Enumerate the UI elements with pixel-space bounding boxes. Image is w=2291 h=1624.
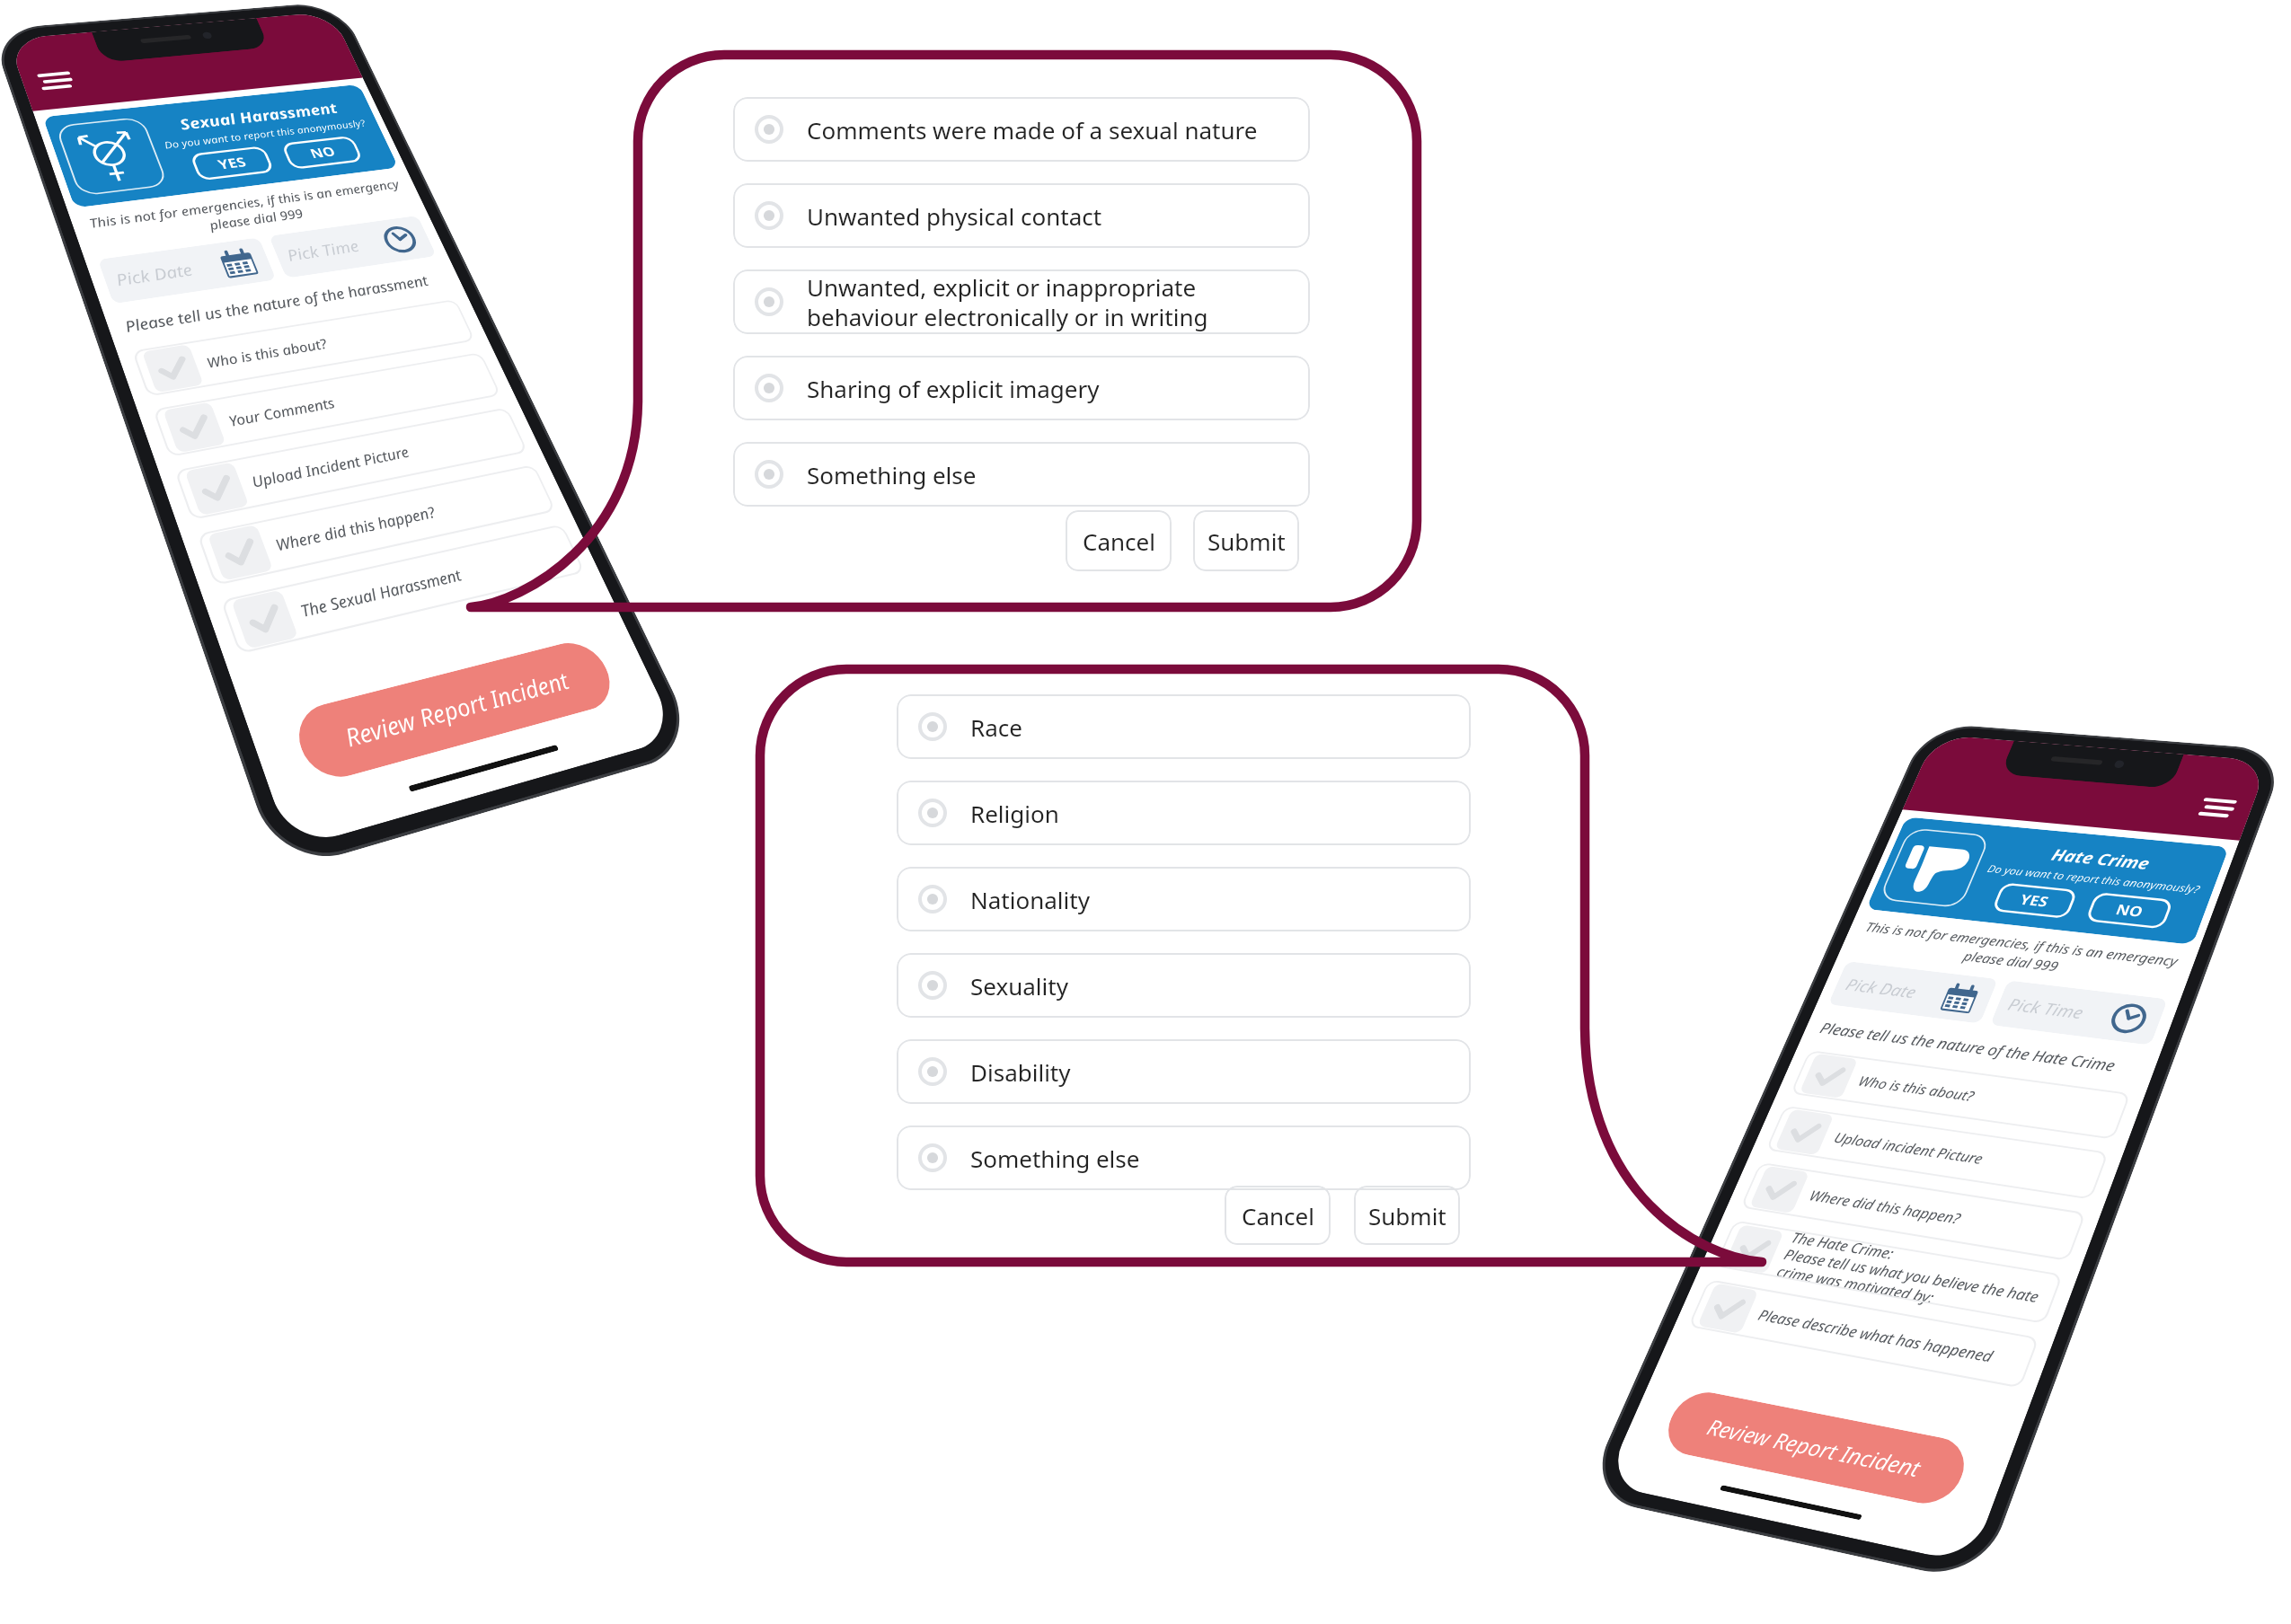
staticText: Pick Time — [2004, 993, 2087, 1024]
staticText: Religion — [970, 798, 1059, 829]
staticText: Please describe what has happened — [1755, 1305, 1996, 1367]
button[interactable]: Unwanted, explicit or inappropriate beha… — [733, 269, 1310, 334]
button[interactable]: Review Report Incident — [289, 636, 621, 785]
staticText: Upload Incident Picture — [248, 442, 413, 492]
staticText: Pick Date — [112, 259, 197, 291]
button[interactable]: Pick Time — [1990, 980, 2168, 1045]
staticText: Pick Time — [283, 236, 363, 266]
staticText: Pick Date — [1842, 974, 1921, 1003]
button[interactable]: Who is this about? — [1790, 1050, 2131, 1140]
button[interactable]: Upload Incident Picture — [174, 407, 528, 520]
staticText: Unwanted physical contact — [807, 200, 1102, 232]
button[interactable]: NO — [2085, 892, 2174, 929]
button[interactable]: YES — [189, 146, 275, 181]
button[interactable]: Race — [897, 694, 1471, 759]
staticText: Comments were made of a sexual nature — [807, 114, 1258, 146]
button[interactable]: Pick Date — [98, 237, 276, 304]
button[interactable]: Something else — [897, 1125, 1471, 1190]
button[interactable]: Submit — [1193, 510, 1299, 571]
staticText: Where did this happen? — [272, 502, 439, 555]
staticText: Race — [970, 711, 1022, 743]
staticText: This is not for emergencies, if this is … — [82, 176, 413, 249]
staticText: Nationality — [970, 884, 1090, 915]
staticText: Please tell us the nature of the harassm… — [122, 269, 448, 337]
button[interactable]: Submit — [1354, 1186, 1460, 1245]
button[interactable]: Cancel — [1225, 1186, 1331, 1245]
staticText: NO — [2113, 900, 2146, 921]
button[interactable]: Religion — [897, 781, 1471, 845]
staticText: Sexual Harassment — [176, 98, 341, 134]
staticText: Cancel — [1242, 1200, 1314, 1231]
staticText: NO — [307, 143, 338, 162]
button[interactable]: Please describe what has happened — [1688, 1279, 2039, 1388]
button[interactable]: Something else — [733, 442, 1310, 507]
staticText: YES — [2017, 890, 2052, 911]
staticText: The Sexual Harassment — [297, 564, 465, 622]
button[interactable]: Cancel — [1066, 510, 1172, 571]
staticText: Cancel — [1083, 525, 1155, 557]
staticText: Do you want to report this anonymously? — [1985, 861, 2203, 896]
staticText: The Hate Crime: Please tell us what you … — [1774, 1228, 2050, 1325]
button[interactable]: Where did this happen? — [197, 464, 556, 586]
button[interactable]: Pick Time — [269, 215, 437, 278]
staticText: Sexuality — [970, 970, 1068, 1002]
staticText: YES — [215, 153, 250, 173]
button[interactable]: Your Comments — [153, 352, 501, 457]
button[interactable]: Unwanted physical contact — [733, 183, 1310, 248]
staticText: Submit — [1207, 525, 1286, 557]
button[interactable]: Where did this happen? — [1740, 1162, 2086, 1261]
button[interactable]: Comments were made of a sexual nature — [733, 97, 1310, 162]
staticText: Who is this about? — [1856, 1072, 1978, 1105]
button[interactable]: The Sexual Harassment — [220, 524, 585, 654]
staticText: Hate Crime — [2049, 843, 2154, 874]
button[interactable]: Nationality — [897, 867, 1471, 931]
staticText: Your Comments — [226, 393, 338, 431]
staticText: Submit — [1368, 1200, 1446, 1231]
staticText: Unwanted, explicit or inappropriate beha… — [807, 271, 1208, 333]
staticText: Upload incident Picture — [1831, 1128, 1986, 1168]
staticText: This is not for emergencies, if this is … — [1851, 918, 2185, 989]
staticText: Where did this happen? — [1806, 1186, 1964, 1228]
button[interactable]: Pick Date — [1828, 961, 1998, 1024]
button[interactable]: Review Report Incident — [1658, 1387, 1974, 1509]
staticText: Sharing of explicit imagery — [807, 373, 1100, 404]
button[interactable]: Disability — [897, 1039, 1471, 1104]
staticText: Something else — [970, 1143, 1140, 1174]
button[interactable]: Sharing of explicit imagery — [733, 356, 1310, 420]
staticText: Disability — [970, 1056, 1071, 1088]
button[interactable]: Who is this about? — [132, 299, 475, 397]
staticText: Something else — [807, 459, 977, 490]
staticText: Review Report Incident — [1703, 1412, 1926, 1483]
button[interactable]: YES — [1991, 882, 2078, 919]
button[interactable]: Upload incident Picture — [1766, 1106, 2109, 1200]
button[interactable]: Menu — [2200, 798, 2235, 818]
staticText: Who is this about? — [204, 335, 331, 372]
staticText: Review Report Incident — [340, 664, 575, 754]
button[interactable]: Sexuality — [897, 953, 1471, 1018]
button[interactable]: Menu — [39, 72, 73, 90]
button[interactable]: NO — [281, 136, 364, 170]
button[interactable]: The Hate Crime: Please tell us what you … — [1714, 1220, 2063, 1324]
staticText: Do you want to report this anonymously? — [162, 117, 368, 151]
staticText: Please tell us the nature of the Hate Cr… — [1817, 1018, 2142, 1079]
